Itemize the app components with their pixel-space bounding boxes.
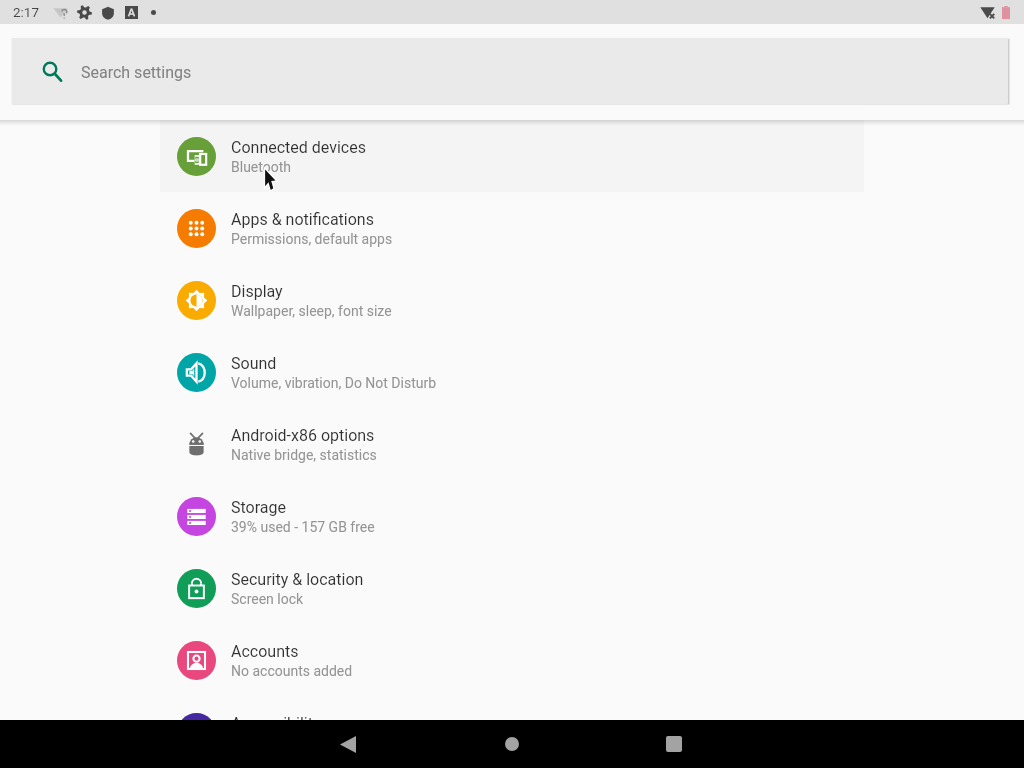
button[interactable]: Back — [324, 720, 372, 768]
staticText: Android-x86 options — [231, 426, 375, 445]
staticText: Screen readers, display, interaction — [231, 735, 447, 751]
button[interactable]: Recent apps — [650, 720, 698, 768]
staticText: Display — [231, 282, 283, 301]
staticText: No accounts added — [231, 663, 353, 679]
staticText: Accounts — [231, 642, 299, 661]
button[interactable]: Accounts — [160, 624, 864, 696]
staticText: 2:17 — [13, 4, 40, 20]
staticText: Native bridge, statistics — [231, 447, 377, 463]
staticText: Bluetooth — [231, 159, 291, 175]
button[interactable]: Apps & notifications — [160, 192, 864, 264]
button[interactable]: Storage — [160, 480, 864, 552]
staticText: Storage — [231, 498, 286, 517]
button[interactable]: Security & location — [160, 552, 864, 624]
staticText: Apps & notifications — [231, 210, 374, 229]
button[interactable]: Display — [160, 264, 864, 336]
staticText: Wallpaper, sleep, font size — [231, 303, 392, 319]
button[interactable]: Search settings — [12, 38, 1008, 104]
staticText: 39% used - 157 GB free — [231, 519, 375, 535]
staticText: Screen lock — [231, 591, 304, 607]
staticText: Security & location — [231, 570, 364, 589]
staticText: Accessibility — [231, 714, 321, 733]
button[interactable]: Sound — [160, 336, 864, 408]
staticText: Search settings — [81, 63, 192, 82]
button[interactable]: Android-x86 options — [160, 408, 864, 480]
staticText: Permissions, default apps — [231, 231, 393, 247]
staticText: Connected devices — [231, 138, 366, 157]
staticText: Volume, vibration, Do Not Disturb — [231, 375, 437, 391]
button[interactable]: Connected devices — [160, 120, 864, 192]
button[interactable]: Home — [488, 720, 536, 768]
button[interactable]: Accessibility — [160, 696, 864, 768]
staticText: Sound — [231, 354, 277, 373]
